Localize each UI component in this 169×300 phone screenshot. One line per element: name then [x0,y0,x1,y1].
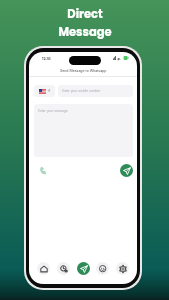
button[interactable]: Settings [116,262,129,275]
staticText: Send Message to Whatsapp [60,69,107,73]
button[interactable]: Enter your message [34,104,133,157]
staticText: Enter your mobile number [62,89,101,93]
staticText: Message [58,24,112,40]
staticText: Direct [67,6,103,22]
staticText: Enter your message [38,109,68,113]
button[interactable]: +1 [34,85,55,97]
button[interactable]: Send message [120,164,133,177]
button[interactable]: Scheduled messages [57,262,70,275]
staticText: +1 [47,89,51,93]
button[interactable]: Home [37,262,50,275]
button[interactable]: Enter your mobile number [58,85,133,97]
staticText: 12:36 [42,57,51,61]
button[interactable]: Status saver [96,262,109,275]
button[interactable]: Send [77,262,90,275]
button[interactable]: Call [36,163,50,177]
